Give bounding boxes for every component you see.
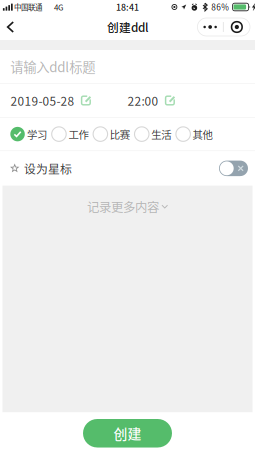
staticText: 22:00	[127, 92, 158, 109]
button[interactable]: 设为星标	[0, 151, 255, 186]
staticText: 设为星标	[24, 160, 72, 177]
button[interactable]: 2019-05-28	[10, 84, 127, 117]
staticText: 请输入ddl标题	[10, 57, 95, 76]
button[interactable]: 其他	[176, 124, 213, 144]
button[interactable]: Back	[0, 14, 29, 40]
staticText: 比赛	[110, 127, 130, 142]
staticText: 工作	[68, 127, 88, 142]
staticText: 学习	[27, 127, 47, 142]
button[interactable]: 22:00	[127, 84, 244, 117]
staticText: 中国联通	[14, 2, 42, 12]
staticText: 4G	[54, 1, 64, 13]
staticText: 创建	[113, 423, 141, 443]
button[interactable]: 工作	[52, 124, 88, 144]
button[interactable]: 比赛	[93, 124, 130, 144]
staticText: 生活	[151, 127, 171, 142]
staticText: 创建ddl	[107, 18, 148, 35]
button[interactable]: More options	[197, 18, 255, 36]
button[interactable]: 生活	[134, 124, 171, 144]
button[interactable]: 创建	[83, 419, 172, 447]
staticText: 2019-05-28	[10, 92, 74, 109]
button[interactable]: 学习	[10, 124, 47, 144]
staticText: 86%	[211, 1, 229, 13]
staticText: 其他	[193, 127, 213, 142]
staticText: 18:41	[116, 1, 139, 13]
staticText: 记录更多内容	[87, 198, 159, 216]
